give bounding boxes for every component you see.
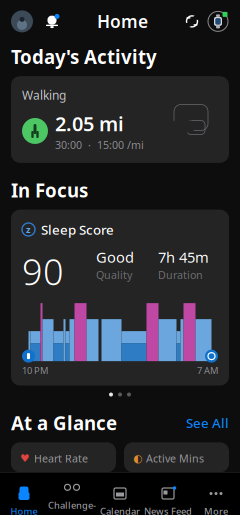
staticText: 30:00 · 15:00 /mi xyxy=(55,138,144,152)
staticText: Duration xyxy=(158,268,203,282)
staticText: 90 xyxy=(22,247,64,295)
staticText: 7 AM xyxy=(197,364,218,376)
button[interactable]: Walking xyxy=(11,76,229,163)
button[interactable]: News Feed xyxy=(144,486,192,515)
staticText: Challenges xyxy=(48,499,96,515)
staticText: Today's Activity xyxy=(11,44,157,69)
button[interactable]: Challenges xyxy=(48,480,96,515)
button[interactable]: Profile xyxy=(11,10,33,32)
staticText: At a Glance xyxy=(11,410,117,435)
button[interactable]: Home xyxy=(0,486,48,515)
button[interactable]: z xyxy=(11,210,229,385)
staticText: Sleep Score xyxy=(41,221,114,238)
staticText: Quality xyxy=(96,268,132,282)
button[interactable]: See All xyxy=(186,414,229,432)
staticText: Home xyxy=(10,505,37,515)
staticText: ◐ xyxy=(133,452,142,464)
button[interactable]: Notifications xyxy=(41,10,63,32)
staticText: ♥ xyxy=(20,452,30,464)
button[interactable]: Sync xyxy=(182,11,202,31)
staticText: See All xyxy=(186,414,229,432)
staticText: Home xyxy=(97,10,148,33)
staticText: z xyxy=(26,223,31,236)
staticText: Good xyxy=(96,247,134,267)
staticText: Active Mins xyxy=(146,451,204,465)
staticText: Heart Rate xyxy=(34,451,88,465)
staticText: More xyxy=(204,505,228,515)
button[interactable]: Calendar xyxy=(96,486,144,515)
staticText: Calendar xyxy=(100,505,140,515)
staticText: News Feed xyxy=(144,505,192,515)
button[interactable]: Connected watch xyxy=(207,10,229,32)
button[interactable]: ◐ xyxy=(124,442,229,472)
staticText: 2.05 mi xyxy=(55,110,124,137)
button[interactable]: ♥ xyxy=(11,442,116,472)
staticText: 7h 45m xyxy=(158,247,209,267)
button[interactable]: More xyxy=(192,486,240,515)
staticText: Walking xyxy=(22,87,66,103)
staticText: 10 PM xyxy=(22,364,48,376)
staticText: In Focus xyxy=(11,178,88,203)
